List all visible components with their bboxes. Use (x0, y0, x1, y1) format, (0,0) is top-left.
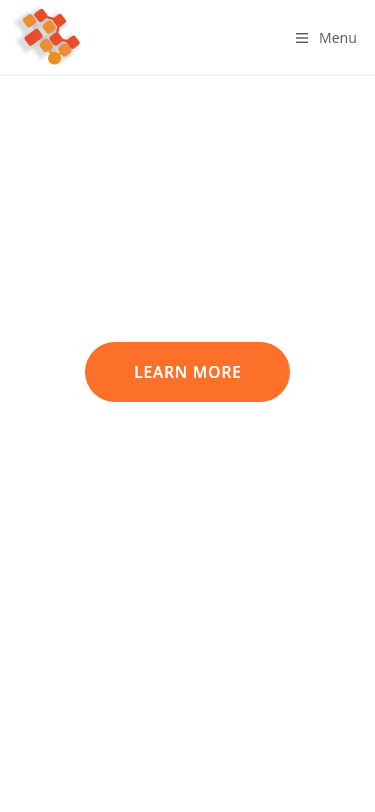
button[interactable]: Menu (296, 28, 357, 47)
button[interactable]: LEARN MORE (85, 342, 290, 402)
staticText: Menu (319, 28, 357, 47)
staticText: LEARN MORE (134, 361, 242, 382)
button[interactable]: Home (15, 6, 85, 69)
